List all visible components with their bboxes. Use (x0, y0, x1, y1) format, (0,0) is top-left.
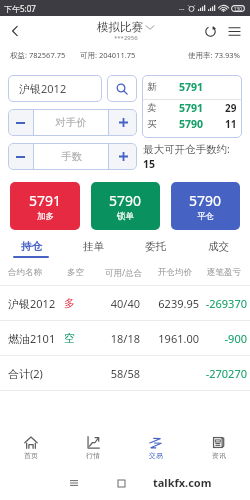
staticText: 合约名称 (8, 267, 42, 278)
staticText: ***2956 (114, 34, 138, 42)
staticText: 平仓 (197, 211, 214, 222)
staticText: -900 (199, 331, 247, 346)
button[interactable]: Increase (109, 109, 137, 136)
button[interactable]: 首页 (0, 431, 62, 465)
staticText: 可用/总合 (105, 267, 143, 279)
staticText: 多空 (67, 267, 84, 278)
button[interactable]: Increase (109, 143, 137, 170)
staticText: 合计(2) (8, 366, 64, 381)
staticText: 下午5:07 (4, 3, 36, 14)
button[interactable]: 燃油2101 (8, 321, 247, 355)
staticText: 新 (147, 81, 157, 93)
button[interactable]: 手数 (34, 143, 108, 170)
staticText: 持仓 (21, 240, 42, 253)
staticText: 首页 (24, 451, 38, 460)
staticText: 买 (147, 118, 157, 130)
button[interactable]: Refresh (198, 19, 222, 43)
staticText: 手数 (61, 150, 82, 163)
staticText: 6239.95 (140, 296, 199, 311)
staticText: 40/40 (86, 296, 140, 311)
staticText: 5791 (179, 101, 204, 115)
button[interactable]: Recents (64, 473, 84, 493)
button[interactable]: Decrease (8, 143, 33, 170)
button[interactable]: 模拟比赛 (97, 20, 154, 42)
staticText: -269370 (199, 296, 247, 311)
staticText: 多 (64, 296, 86, 310)
button[interactable]: Menu (222, 19, 246, 43)
staticText: 资讯 (212, 451, 226, 460)
staticText: ... (179, 3, 185, 13)
button[interactable]: 5790 (91, 182, 160, 230)
staticText: 委托 (145, 240, 166, 253)
staticText: 加多 (37, 211, 54, 222)
staticText: 开仓均价 (158, 267, 192, 278)
staticText: 29 (225, 101, 237, 115)
button[interactable]: Back (0, 16, 30, 46)
staticText: 15 (143, 157, 156, 171)
staticText: 5790 (189, 191, 222, 210)
button[interactable]: 对手价 (34, 109, 108, 136)
staticText: 挂单 (83, 240, 104, 253)
staticText: 5791 (179, 80, 204, 94)
staticText: 行情 (86, 451, 100, 460)
staticText: 锁单 (117, 211, 134, 222)
button[interactable]: 资讯 (187, 431, 250, 465)
button[interactable]: 行情 (62, 431, 124, 465)
button[interactable]: 成交 (187, 234, 250, 258)
staticText: 11 (225, 117, 237, 131)
staticText: 逐笔盈亏 (207, 267, 241, 278)
staticText: 使用率: 73.93% (188, 50, 240, 60)
staticText: 18/18 (86, 331, 140, 346)
button[interactable]: Decrease (8, 109, 33, 136)
button[interactable]: 持仓 (0, 234, 62, 258)
button[interactable]: 5791 (10, 182, 80, 230)
staticText: talkfx.com (153, 475, 212, 490)
staticText: 58/58 (86, 366, 140, 381)
button[interactable]: 沪银2012 (8, 75, 102, 102)
staticText: -270270 (199, 366, 247, 381)
button[interactable]: Search (107, 75, 137, 102)
staticText: 燃油2101 (8, 331, 64, 346)
staticText: 空 (64, 331, 86, 345)
staticText: 沪银2012 (19, 81, 67, 96)
button[interactable]: 交易 (124, 431, 187, 465)
button[interactable]: 沪银2012 (8, 286, 247, 320)
button[interactable]: 委托 (124, 234, 187, 258)
staticText: 5790 (109, 191, 142, 210)
staticText: 5791 (29, 191, 62, 210)
staticText: 5790 (179, 117, 204, 131)
staticText: 权益: 782567.75 (10, 50, 66, 60)
button[interactable]: 5790 (171, 182, 240, 230)
staticText: 卖 (147, 102, 157, 114)
staticText: 沪银2012 (8, 296, 64, 311)
staticText: 交易 (149, 451, 163, 460)
staticText: 可用: 204011.75 (80, 50, 136, 60)
staticText: 130 (234, 6, 242, 12)
button[interactable]: 挂单 (62, 234, 124, 258)
staticText: 模拟比赛 (97, 20, 143, 34)
staticText: 成交 (208, 240, 229, 253)
staticText: 最大可开仓手数约: (143, 142, 230, 156)
staticText: 1961.00 (140, 331, 199, 346)
button[interactable]: Home (111, 473, 131, 493)
staticText: 对手价 (55, 116, 87, 129)
